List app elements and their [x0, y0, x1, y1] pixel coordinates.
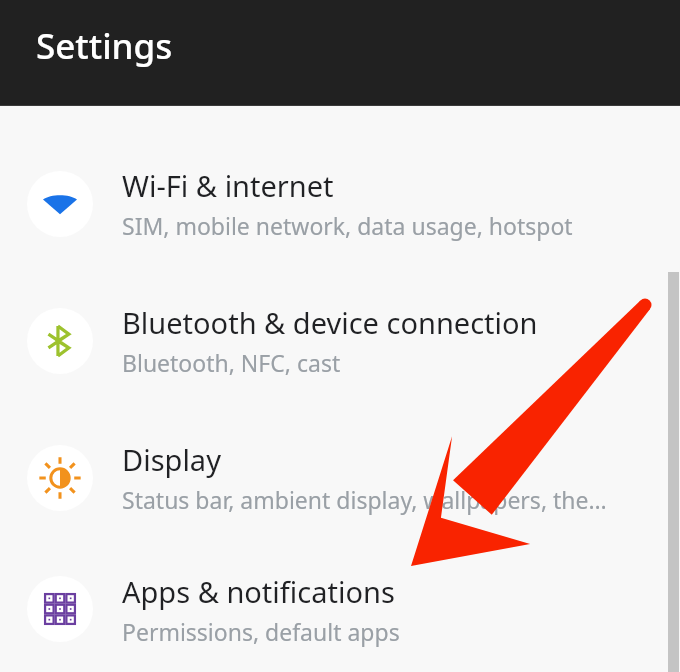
staticText: Status bar, ambient display, wallpapers,… [122, 484, 607, 515]
button[interactable]: Bluetooth [0, 272, 680, 409]
staticText: Settings [36, 22, 173, 70]
other: Display [42, 460, 78, 496]
staticText: Display [122, 440, 221, 479]
staticText: Permissions, default apps [122, 616, 400, 647]
button[interactable]: Display [0, 409, 680, 546]
staticText: Apps & notifications [122, 572, 395, 611]
button[interactable]: Apps and notifications [0, 546, 680, 672]
staticText: Bluetooth & device connection [122, 303, 538, 342]
button[interactable]: Wi-Fi [0, 106, 680, 272]
other: Wi-Fi [43, 187, 77, 221]
other: Apps and notifications [44, 593, 76, 625]
staticText: Wi-Fi & internet [122, 166, 334, 205]
staticText: SIM, mobile network, data usage, hotspot [122, 210, 573, 241]
other: Bluetooth [43, 324, 77, 358]
staticText: Bluetooth, NFC, cast [122, 347, 341, 378]
